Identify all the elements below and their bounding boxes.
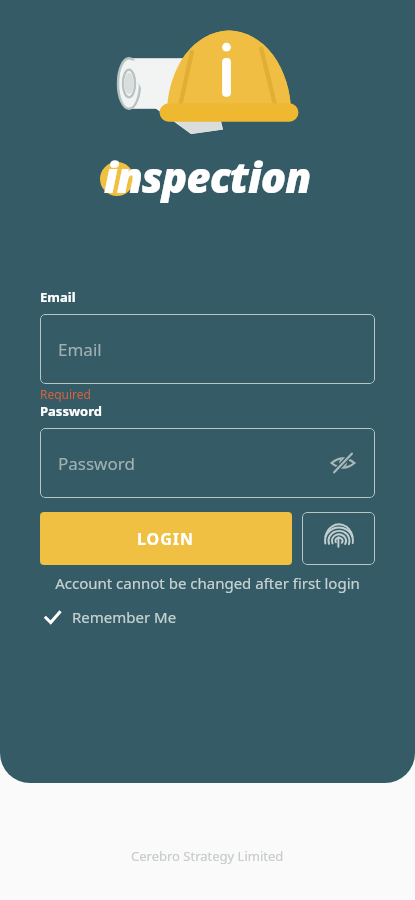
staticText: Password	[58, 452, 135, 475]
staticText: Password	[40, 402, 102, 420]
button[interactable]: LOGIN	[40, 512, 292, 565]
button[interactable]: Show password	[323, 443, 363, 483]
button[interactable]: Password	[40, 428, 375, 498]
button[interactable]: Remember Me	[40, 605, 177, 629]
button[interactable]: Email	[40, 314, 375, 384]
staticText: Account cannot be changed after first lo…	[40, 573, 375, 593]
staticText: LOGIN	[137, 528, 195, 550]
staticText: Email	[58, 338, 102, 361]
staticText: inspection	[104, 148, 311, 205]
staticText: Remember Me	[72, 607, 177, 627]
staticText: Cerebro Strategy Limited	[131, 847, 284, 865]
button[interactable]: Login with fingerprint	[302, 512, 375, 565]
staticText: Required	[40, 386, 91, 402]
staticText: Email	[40, 288, 76, 306]
